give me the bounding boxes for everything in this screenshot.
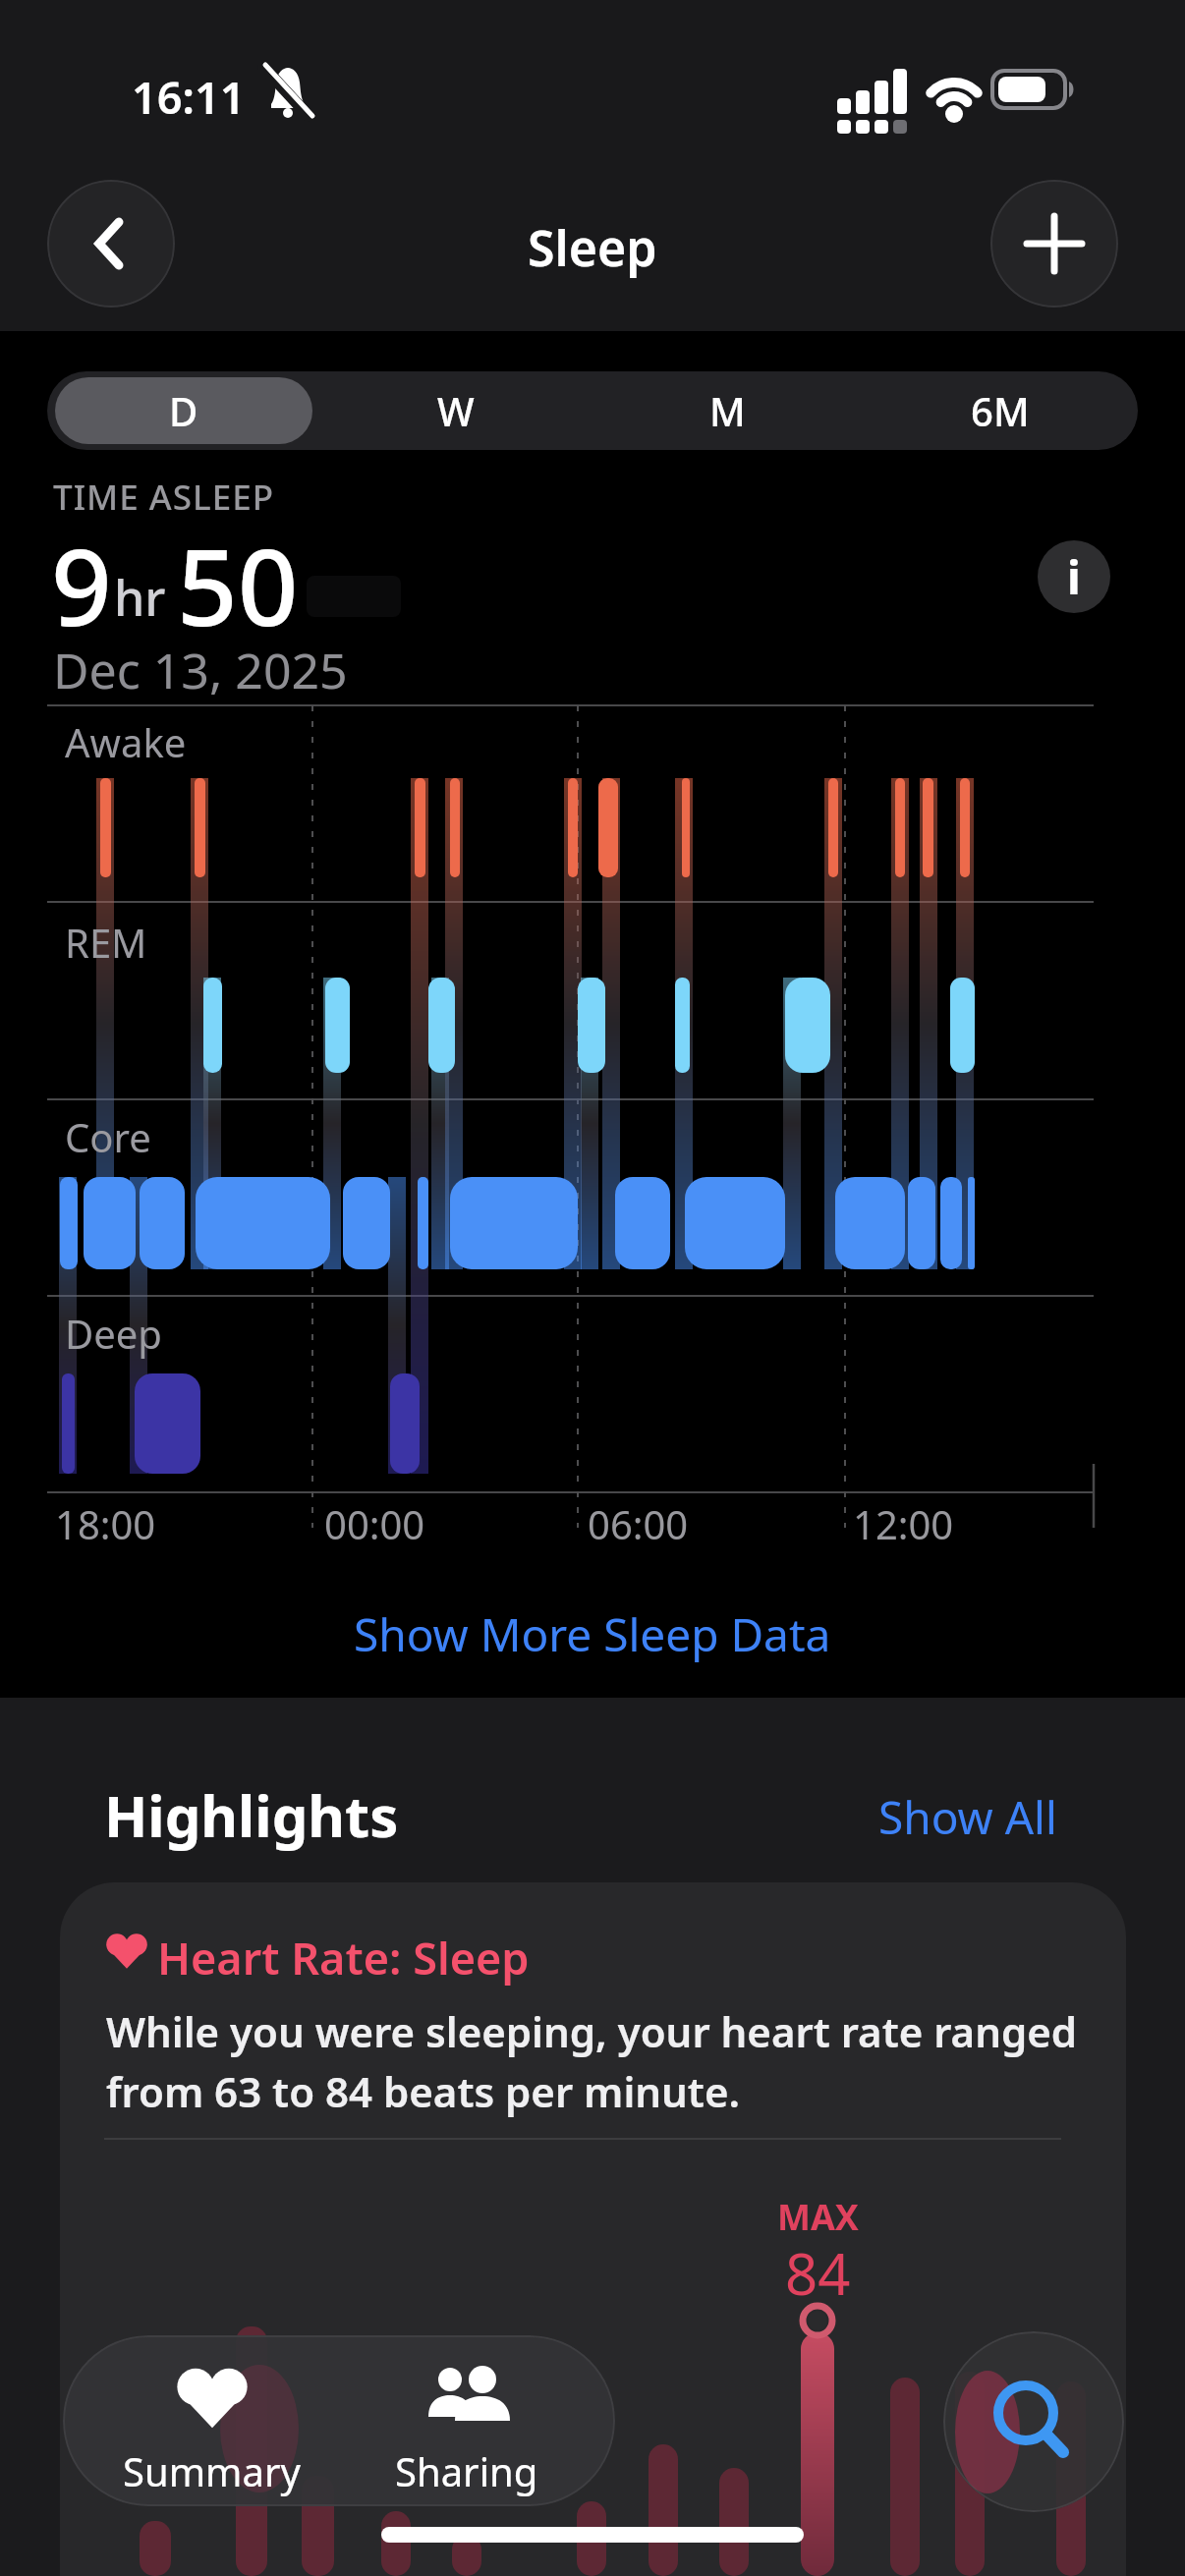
button[interactable] (47, 180, 175, 308)
staticText: Core (65, 1110, 151, 1163)
button[interactable]: i (1038, 540, 1110, 613)
staticText: Summary (123, 2444, 301, 2497)
staticText: Sleep (528, 214, 657, 281)
button[interactable]: W (319, 377, 592, 444)
staticText: Show All (878, 1786, 1057, 1845)
staticText: TIME ASLEEP (53, 474, 274, 521)
staticText: 6M (971, 384, 1030, 437)
button[interactable]: M (592, 377, 864, 444)
staticText: 18:00 (55, 1497, 156, 1550)
staticText: M (709, 384, 746, 437)
staticText: from 63 to 84 beats per minute. (106, 2063, 741, 2119)
staticText: i (1067, 546, 1081, 608)
staticText: REM (65, 916, 147, 969)
button[interactable]: Sharing (354, 2348, 580, 2495)
staticText: W (437, 384, 475, 437)
staticText: Dec 13, 2025 (53, 637, 348, 703)
button[interactable]: Show More Sleep Data (0, 1599, 1185, 1668)
staticText: 50 (177, 513, 299, 657)
button[interactable]: Summary (98, 2348, 324, 2495)
button[interactable]: D (47, 377, 319, 444)
staticText: Awake (65, 715, 187, 768)
staticText: Highlights (104, 1776, 399, 1854)
button[interactable]: Show All (871, 1786, 1057, 1845)
staticText: Show More Sleep Data (354, 1603, 831, 1665)
staticText: Sharing (395, 2444, 538, 2497)
staticText: Deep (65, 1307, 162, 1360)
staticText: 06:00 (588, 1497, 689, 1550)
button[interactable] (55, 377, 312, 444)
staticText: 00:00 (324, 1497, 425, 1550)
staticText: 12:00 (853, 1497, 954, 1550)
staticText: D (169, 384, 198, 437)
staticText: MAX (777, 2193, 859, 2241)
staticText: Heart Rate: Sleep (157, 1928, 530, 1988)
staticText: 16:11 (132, 67, 246, 127)
button[interactable] (943, 2331, 1124, 2512)
button[interactable]: 6M (864, 377, 1136, 444)
button[interactable] (990, 180, 1118, 308)
staticText: 84 (785, 2234, 851, 2312)
staticText: hr (114, 564, 166, 631)
staticText: 9 (51, 513, 112, 657)
staticText: While you were sleeping, your heart rate… (106, 2003, 1078, 2059)
button[interactable]: Heart Rate: Sleep (60, 1882, 1126, 2576)
